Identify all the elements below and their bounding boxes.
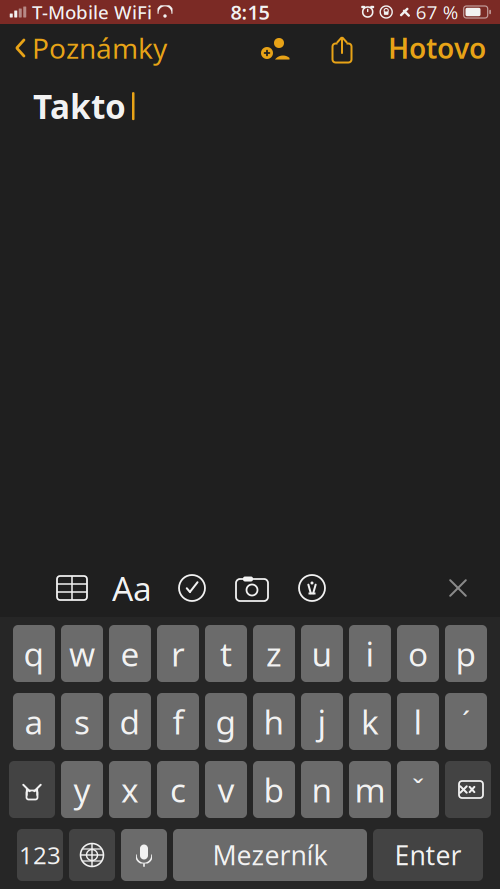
staticText: u	[311, 631, 332, 676]
button[interactable]: b	[253, 761, 295, 818]
staticText: e	[120, 631, 139, 676]
staticText: m	[354, 767, 385, 812]
button[interactable]: g	[205, 693, 247, 750]
staticText: 8:15	[230, 0, 269, 25]
staticText: p	[455, 631, 476, 676]
button[interactable]: u	[301, 625, 343, 682]
staticText: h	[263, 699, 284, 744]
button[interactable]: Mezerník	[173, 829, 367, 881]
staticText: g	[215, 699, 236, 744]
staticText: a	[24, 699, 43, 744]
button[interactable]: Next Keyboard	[69, 829, 115, 881]
staticText: r	[171, 631, 185, 676]
button[interactable]: Checklist	[162, 566, 222, 610]
staticText: l	[413, 699, 422, 744]
button[interactable]: ´	[445, 693, 487, 750]
button[interactable]: m	[349, 761, 391, 818]
button[interactable]: Shift	[9, 761, 55, 818]
button[interactable]: f	[157, 693, 199, 750]
button[interactable]: Hotovo	[388, 23, 500, 73]
button[interactable]: 123	[17, 829, 63, 881]
button[interactable]: o	[397, 625, 439, 682]
staticText: n	[311, 767, 332, 812]
staticText: Poznámky	[32, 29, 167, 67]
staticText: d	[119, 699, 140, 744]
staticText: c	[170, 767, 186, 812]
staticText: ˇ	[412, 770, 424, 809]
button[interactable]: h	[253, 693, 295, 750]
button[interactable]: k	[349, 693, 391, 750]
staticText: ´	[462, 702, 470, 741]
staticText: 67 %	[416, 0, 459, 24]
staticText: j	[317, 699, 326, 744]
button[interactable]: Delete	[445, 761, 491, 818]
staticText: Takto	[33, 84, 126, 128]
staticText: t	[220, 631, 232, 676]
button[interactable]: Enter	[373, 829, 483, 881]
staticText: b	[263, 767, 284, 812]
button[interactable]: x	[109, 761, 151, 818]
button[interactable]: z	[253, 625, 295, 682]
button[interactable]: ˇ	[397, 761, 439, 818]
staticText: Hotovo	[388, 29, 486, 67]
staticText: z	[266, 631, 282, 676]
staticText: 123	[19, 839, 61, 871]
button[interactable]: e	[109, 625, 151, 682]
staticText: k	[361, 699, 379, 744]
button[interactable]: l	[397, 693, 439, 750]
button[interactable]: w	[61, 625, 103, 682]
staticText: Enter	[394, 837, 461, 873]
button[interactable]: r	[157, 625, 199, 682]
button[interactable]: y	[61, 761, 103, 818]
button[interactable]: Insert Table	[42, 566, 102, 610]
button[interactable]: Dictate	[121, 829, 167, 881]
button[interactable]: t	[205, 625, 247, 682]
button[interactable]: Poznámky	[0, 23, 167, 73]
staticText: w	[69, 631, 95, 676]
button[interactable]: v	[205, 761, 247, 818]
staticText: q	[23, 631, 44, 676]
button[interactable]: Markup	[282, 566, 342, 610]
button[interactable]: Camera	[222, 566, 282, 610]
staticText: Mezerník	[212, 837, 327, 873]
button[interactable]: a	[13, 693, 55, 750]
button[interactable]: Add People	[252, 31, 298, 65]
staticText: s	[74, 699, 90, 744]
staticText: T-Mobile WiFi	[32, 0, 152, 24]
button[interactable]: c	[157, 761, 199, 818]
staticText: i	[365, 631, 374, 676]
staticText: o	[408, 631, 428, 676]
button[interactable]: Share	[320, 31, 364, 65]
button[interactable]: n	[301, 761, 343, 818]
button[interactable]: Close Keyboard	[428, 566, 488, 610]
staticText: v	[217, 767, 234, 812]
staticText: f	[172, 699, 183, 744]
staticText: y	[73, 767, 90, 812]
button[interactable]: p	[445, 625, 487, 682]
staticText: x	[121, 767, 139, 812]
button[interactable]: d	[109, 693, 151, 750]
button[interactable]: Format	[102, 566, 162, 610]
button[interactable]: q	[13, 625, 55, 682]
button[interactable]: s	[61, 693, 103, 750]
button[interactable]: i	[349, 625, 391, 682]
staticText: Aa	[112, 566, 152, 610]
button[interactable]: j	[301, 693, 343, 750]
